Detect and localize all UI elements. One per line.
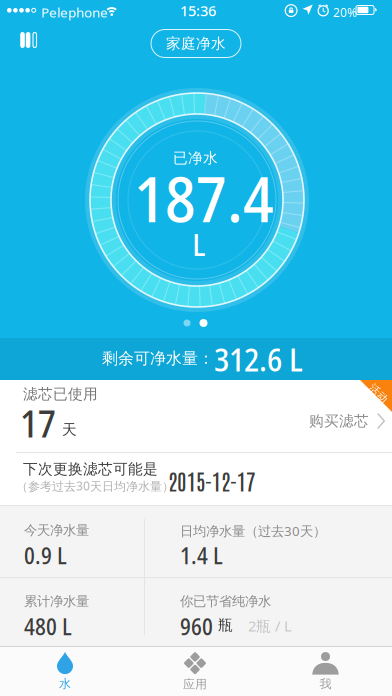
staticText: L	[192, 223, 205, 265]
staticText: 应用	[183, 677, 207, 692]
staticText: 0.9 L	[24, 540, 67, 571]
staticText: 我	[319, 677, 331, 691]
staticText: 187.4	[134, 154, 274, 241]
staticText: 天	[62, 420, 77, 438]
staticText: 日均净水量（过去30天）	[180, 522, 326, 540]
staticText: 480 L	[24, 611, 72, 642]
button[interactable]: 滤芯状态	[6, 24, 39, 56]
staticText: 你已节省纯净水	[180, 593, 271, 609]
button[interactable]: 水	[0, 647, 130, 696]
button[interactable]: 我	[260, 647, 391, 696]
staticText: 家庭净水	[166, 34, 226, 52]
staticText: 1.4 L	[180, 540, 223, 571]
button[interactable]: 活动	[367, 387, 389, 400]
staticText: 2015-12-17	[168, 466, 255, 494]
staticText: 15:36	[180, 1, 216, 20]
staticText: 购买滤芯	[309, 412, 369, 430]
staticText: 20%	[333, 4, 357, 20]
staticText: 滤芯已使用	[23, 385, 98, 403]
staticText: 瓶	[218, 616, 233, 634]
staticText: 剩余可净水量：	[102, 349, 214, 368]
button[interactable]: 应用	[130, 647, 260, 696]
staticText: 已净水	[173, 149, 218, 167]
staticText: 下次更换滤芯可能是	[23, 460, 158, 478]
staticText: 水	[59, 676, 71, 691]
button[interactable]: 购买滤芯	[301, 402, 392, 440]
staticText: 960	[180, 611, 213, 642]
staticText: 累计净水量	[24, 593, 89, 609]
button[interactable]: 家庭净水	[151, 29, 241, 57]
staticText: 活动	[367, 387, 389, 400]
staticText: 今天净水量	[24, 522, 89, 538]
staticText: （参考过去30天日均净水量）	[16, 478, 174, 494]
staticText: Pelephone	[41, 3, 108, 21]
staticText: 312.6 L	[214, 337, 303, 381]
staticText: 2瓶 / L	[248, 616, 292, 635]
staticText: 17	[20, 398, 56, 448]
